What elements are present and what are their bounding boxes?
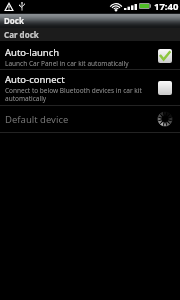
staticText: Auto-connect [5,73,65,86]
button[interactable]: Default device [0,106,180,132]
staticText: 17:40 [154,0,179,13]
staticText: Car dock [4,29,39,40]
button[interactable]: Auto-launch [0,42,180,69]
button[interactable]: Enabled [158,49,172,63]
staticText: Dock [4,15,24,26]
staticText: Connect to below Bluetooth devices in ca… [5,86,149,103]
staticText: Launch Car Panel in car kit automaticall… [5,59,129,68]
other: Loading [157,111,173,127]
button[interactable]: Disabled [158,81,172,95]
staticText: Auto-launch [5,46,60,59]
staticText: Default device [5,113,69,126]
button[interactable]: Auto-connect [0,70,180,105]
